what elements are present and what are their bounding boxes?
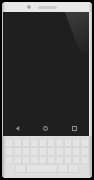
button[interactable]: Home <box>31 120 60 136</box>
button[interactable]: Back <box>3 120 31 136</box>
button[interactable]: Recent apps <box>60 120 89 136</box>
